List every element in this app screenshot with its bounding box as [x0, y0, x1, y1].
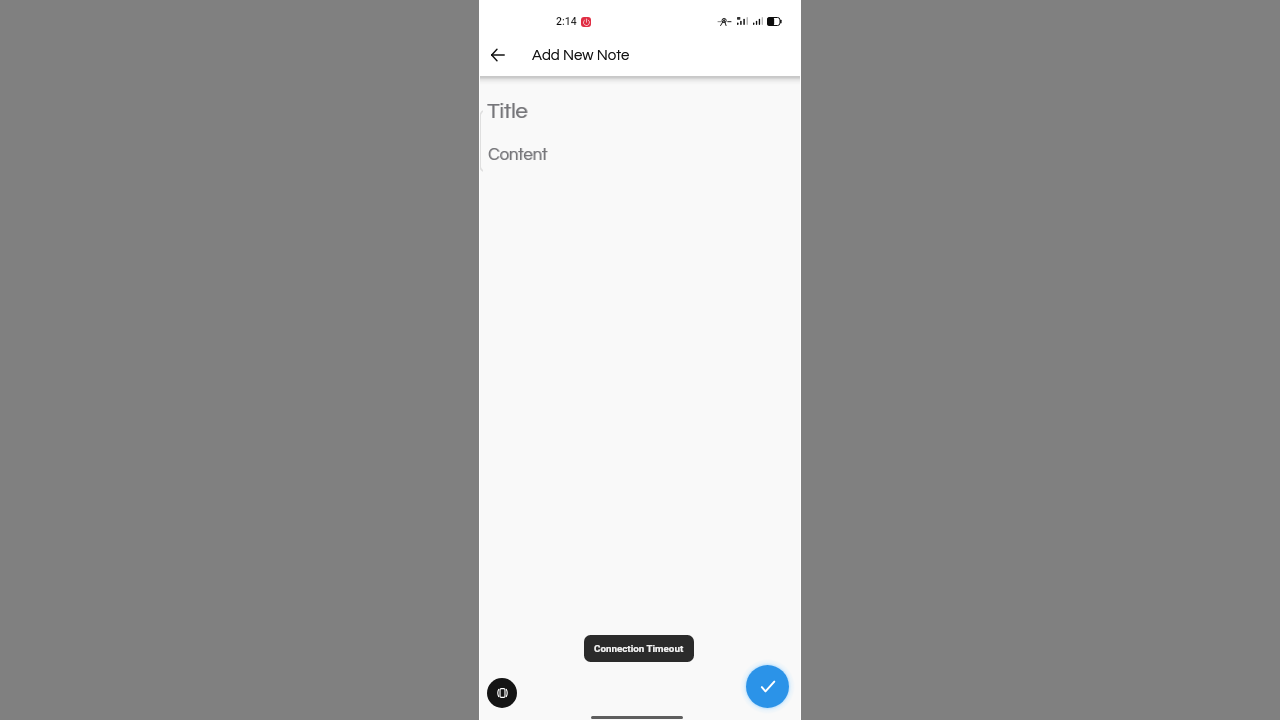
staticText: 2:14: [556, 15, 577, 27]
button[interactable]: Title: [479, 94, 801, 128]
staticText: Content: [489, 146, 549, 163]
button[interactable]: Vibrate mode: [487, 678, 517, 708]
staticText: Title: [488, 100, 529, 122]
staticText: Add New Note: [532, 48, 630, 63]
staticText: Content: [488, 146, 548, 163]
staticText: Title: [487, 100, 528, 122]
staticText: Add New Note: [532, 48, 630, 63]
button[interactable]: Save note: [746, 665, 789, 708]
staticText: Connection Timeout: [594, 643, 684, 654]
button[interactable]: Content: [479, 128, 801, 618]
button[interactable]: Back: [484, 42, 510, 68]
